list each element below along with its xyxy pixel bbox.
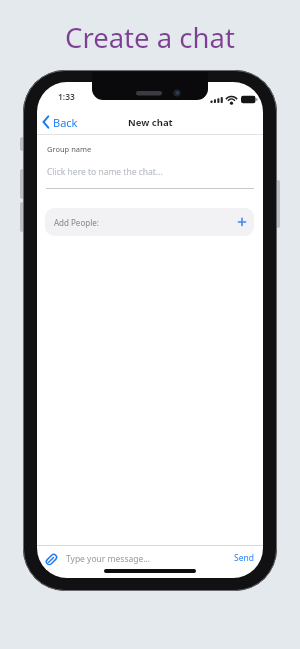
staticText: Type your message... (66, 553, 151, 565)
button[interactable]: Type your message... (37, 546, 263, 570)
staticText: Group name (47, 144, 92, 154)
button[interactable]: Send (234, 552, 254, 564)
staticText: Create a chat (65, 19, 235, 56)
staticText: Add People: (54, 217, 99, 228)
staticText: New chat (128, 116, 173, 129)
staticText: 1:33 (58, 91, 75, 103)
button[interactable]: Back (39, 110, 117, 134)
staticText: Send (234, 552, 254, 564)
button[interactable] (235, 215, 249, 229)
staticText: Click here to name the chat... (47, 166, 163, 178)
button[interactable]: Click here to name the chat... (37, 156, 263, 188)
staticText: Back (53, 115, 78, 130)
button[interactable]: Add People: (45, 208, 254, 236)
